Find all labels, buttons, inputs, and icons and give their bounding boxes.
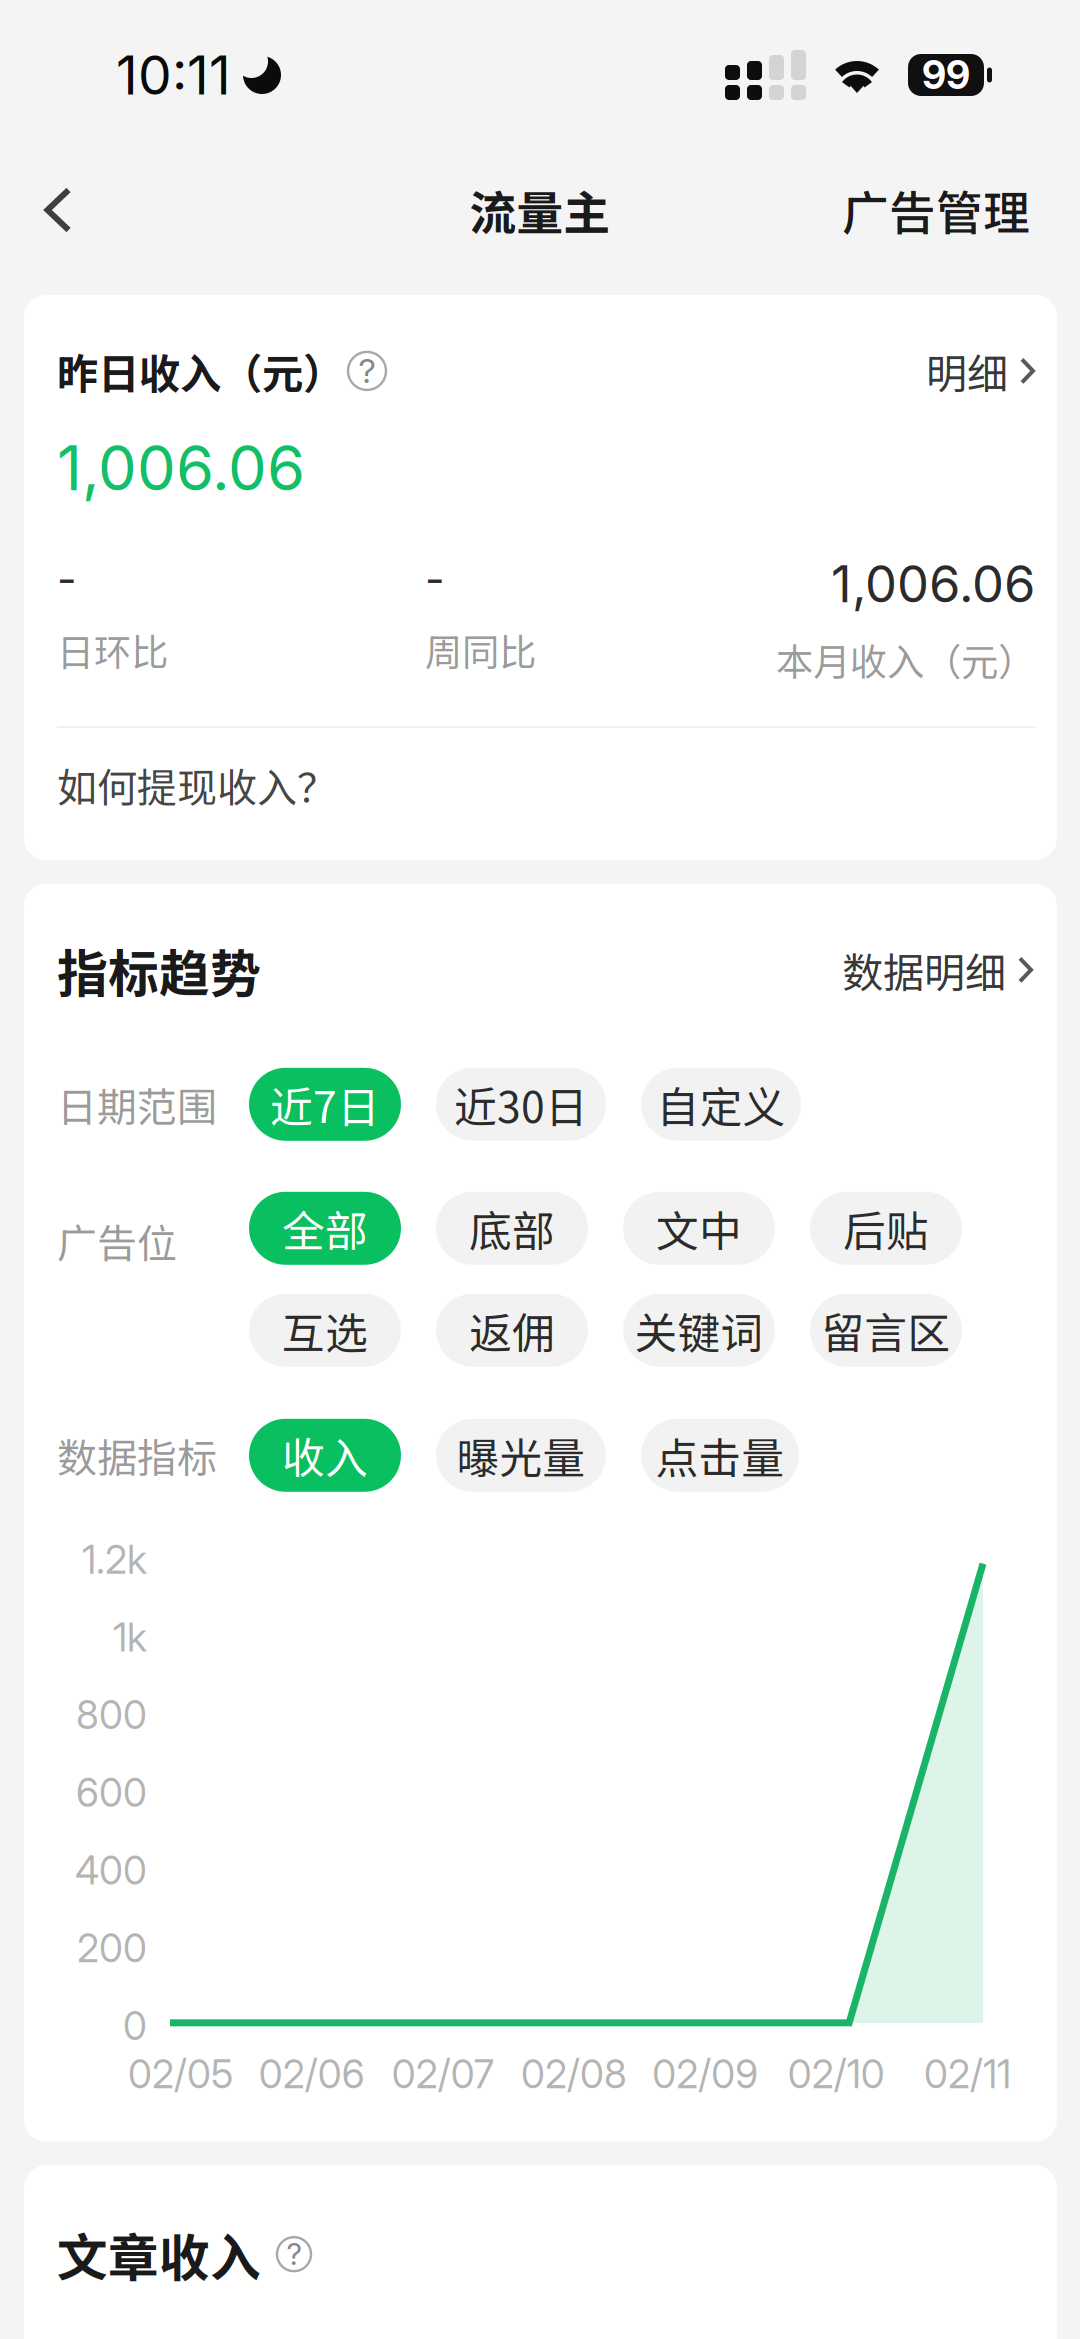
staticText: 流量主 [469,176,610,244]
button[interactable]: 留言区 [810,1294,962,1367]
button[interactable]: 关键词 [623,1294,775,1367]
staticText: 昨日收入（元） [57,341,344,401]
staticText: 1,006.06 [57,431,305,505]
staticText: 底部 [469,1197,555,1259]
staticText: 如何提现收入？ [57,756,337,814]
staticText: 曝光量 [456,1424,585,1486]
staticText: 全部 [282,1197,368,1259]
button[interactable]: 返回 [14,162,102,258]
staticText: 1.2k [82,1536,147,1583]
button[interactable]: 全部 [249,1192,401,1265]
button[interactable]: 广告管理 [836,162,1036,258]
staticText: 近30日 [454,1073,588,1135]
staticText: 02/11 [924,2051,1011,2097]
staticText: 1k [113,1614,147,1661]
staticText: ? [286,2236,301,2272]
button[interactable]: 如何提现收入？ [57,748,1035,822]
staticText: 点击量 [655,1424,784,1486]
staticText: 02/05 [128,2051,233,2097]
staticText: 互选 [282,1299,368,1361]
button[interactable]: 曝光量 [436,1419,606,1492]
button[interactable]: 近7日 [249,1068,401,1141]
button[interactable]: 互选 [249,1294,401,1367]
staticText: 02/10 [788,2051,885,2097]
staticText: 02/07 [392,2051,494,2097]
staticText: 广告位 [57,1212,177,1270]
staticText: 文章收入 [57,2217,261,2291]
button[interactable]: 文中 [623,1192,775,1265]
button[interactable]: 后贴 [810,1192,962,1265]
staticText: - [57,553,77,605]
staticText: 数据明细 [842,940,1006,1000]
staticText: 留言区 [821,1299,950,1361]
staticText: 返佣 [469,1299,555,1361]
staticText: 99 [922,52,970,98]
button[interactable]: 自定义 [641,1068,801,1141]
staticText: 本月收入（元） [776,632,1035,686]
staticText: 800 [76,1692,147,1738]
staticText: 02/08 [521,2051,627,2097]
staticText: 数据指标 [57,1426,217,1484]
staticText: 指标趋势 [57,933,261,1007]
button[interactable]: 点击量 [641,1419,799,1492]
staticText: 自定义 [656,1073,785,1135]
staticText: 600 [76,1769,147,1816]
staticText: 02/06 [259,2051,365,2097]
button[interactable]: 近30日 [436,1068,606,1141]
button[interactable]: 明细 [926,333,1035,409]
staticText: ? [358,351,375,391]
staticText: 日期范围 [57,1075,217,1133]
button[interactable]: 数据明细 [842,932,1033,1008]
staticText: 0 [123,2002,147,2049]
staticText: 收入 [282,1424,368,1486]
staticText: 关键词 [634,1299,763,1361]
staticText: 10:11 [116,43,231,107]
staticText: 02/09 [652,2051,758,2097]
staticText: 200 [77,1925,147,1972]
button[interactable]: 返佣 [436,1294,588,1367]
staticText: 周同比 [425,623,536,677]
staticText: 日环比 [57,623,168,677]
staticText: 文中 [656,1197,742,1259]
staticText: - [425,553,445,605]
staticText: 400 [75,1847,147,1894]
button[interactable]: 收入 [249,1419,401,1492]
staticText: 后贴 [843,1197,929,1259]
staticText: 1,006.06 [831,553,1035,614]
staticText: 明细 [926,341,1008,401]
staticText: 近7日 [270,1073,380,1135]
button[interactable]: 底部 [436,1192,588,1265]
staticText: 广告管理 [842,176,1030,244]
